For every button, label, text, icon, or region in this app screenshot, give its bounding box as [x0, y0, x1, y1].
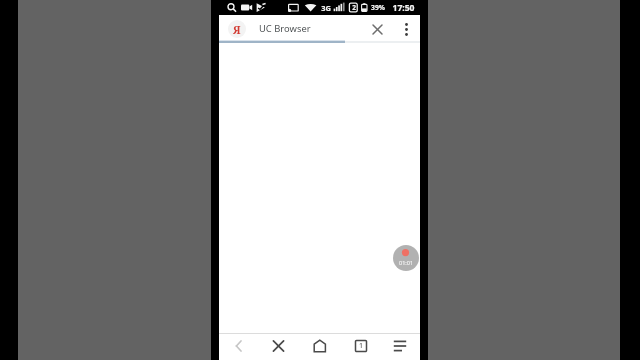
staticText: Я [233, 22, 241, 37]
staticText: 1 [359, 341, 364, 351]
button[interactable] [231, 338, 247, 354]
staticText: UC Browser [259, 22, 311, 35]
staticText: 39% [371, 3, 385, 12]
staticText: 2 [352, 3, 356, 12]
button[interactable] [369, 21, 386, 38]
button[interactable] [312, 338, 328, 354]
button[interactable] [392, 338, 408, 354]
button[interactable]: 1 [353, 338, 369, 354]
button[interactable] [270, 338, 287, 354]
button[interactable] [399, 21, 414, 38]
staticText: 3G [321, 3, 331, 13]
staticText: 17:50 [392, 2, 415, 14]
button[interactable]: 01:01 [393, 245, 419, 271]
staticText: 01:01 [399, 259, 414, 266]
button[interactable]: Я [228, 20, 246, 38]
